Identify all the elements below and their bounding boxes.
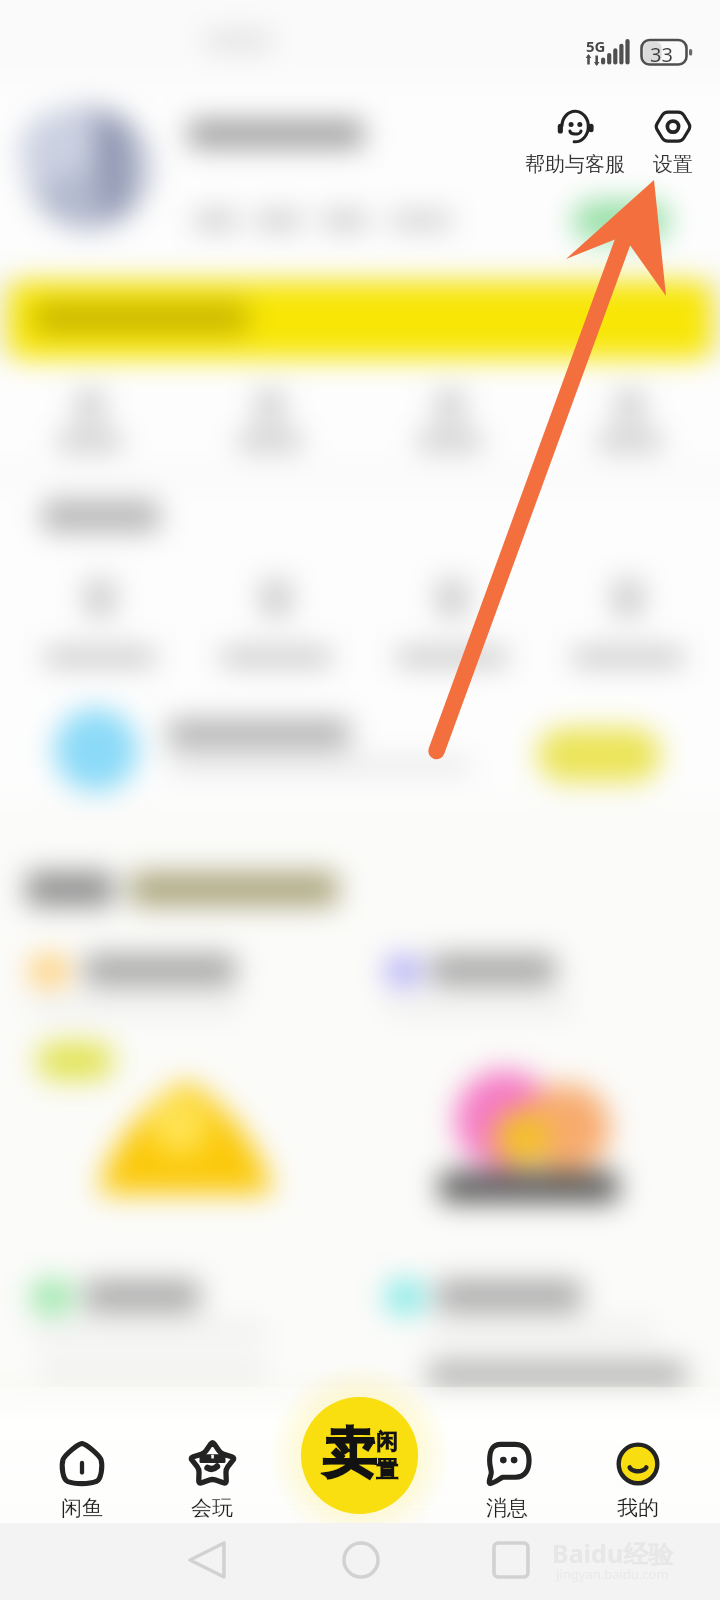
button[interactable]: 卖闲置 xyxy=(301,1397,418,1514)
staticText: 置 xyxy=(376,1456,398,1484)
button[interactable]: 闲鱼 xyxy=(27,1435,137,1527)
staticText: 消息 xyxy=(486,1495,528,1521)
staticText: 会玩 xyxy=(191,1495,233,1521)
staticText: 33 xyxy=(650,41,673,68)
staticText: 闲 xyxy=(376,1428,398,1456)
staticText: 5G xyxy=(586,36,606,56)
staticText: Baidu经验 xyxy=(552,1536,674,1570)
staticText: 卖 xyxy=(322,1420,376,1488)
button[interactable]: 我的 xyxy=(583,1435,693,1527)
button[interactable]: 设置 xyxy=(633,105,713,177)
staticText: 帮助与客服 xyxy=(525,152,625,177)
staticText: 闲鱼 xyxy=(61,1495,103,1521)
button[interactable]: 帮助与客服 xyxy=(520,105,630,177)
other: 帮助与客服 xyxy=(552,105,598,151)
button[interactable]: 会玩 xyxy=(157,1435,267,1527)
staticText: 我的 xyxy=(617,1495,659,1521)
staticText: 设置 xyxy=(653,152,693,177)
other: 设置 xyxy=(650,105,696,151)
button[interactable]: 消息 xyxy=(452,1435,562,1527)
